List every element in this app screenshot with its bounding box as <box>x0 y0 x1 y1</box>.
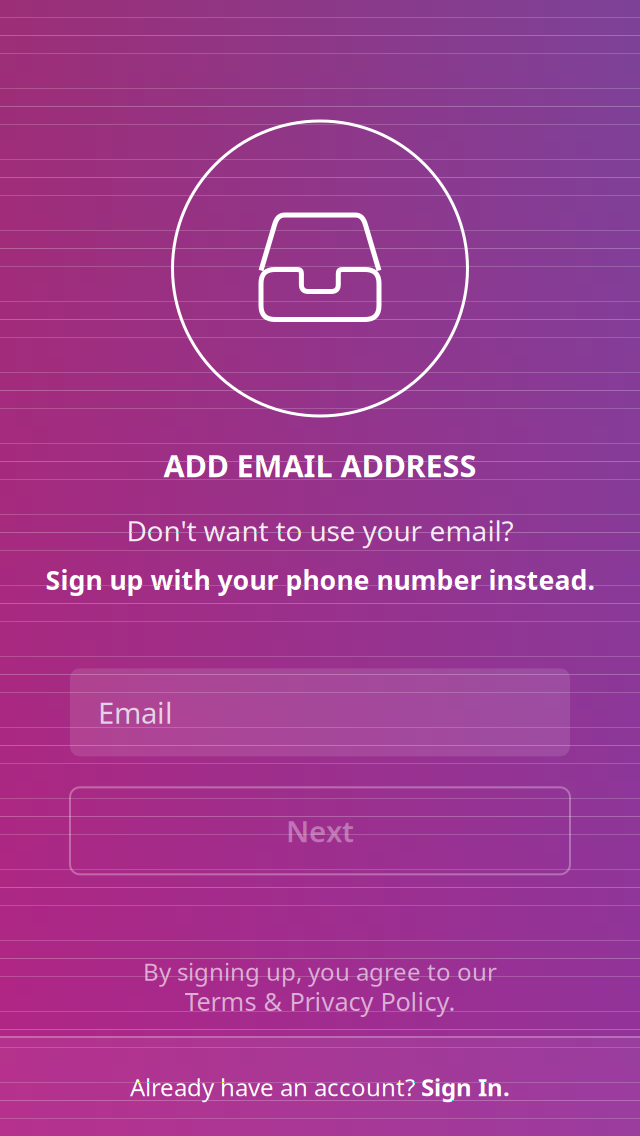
staticText: Terms & Privacy Policy. <box>184 984 455 1018</box>
staticText: ADD EMAIL ADDRESS <box>163 445 476 486</box>
staticText: Email <box>98 693 173 732</box>
button[interactable]: Next <box>70 787 570 874</box>
staticText: Already have an account? Sign In. <box>130 1071 510 1103</box>
button[interactable]: Already have an account? Sign In. <box>0 1038 640 1136</box>
staticText: Next <box>286 811 354 850</box>
button[interactable]: By signing up, you agree to our <box>143 955 497 1018</box>
staticText: By signing up, you agree to our <box>143 955 497 987</box>
staticText: Don't want to use your email? <box>126 512 513 549</box>
staticText: Sign up with your phone number instead. <box>45 562 594 597</box>
button[interactable]: Sign up with your phone number instead. <box>45 562 594 597</box>
